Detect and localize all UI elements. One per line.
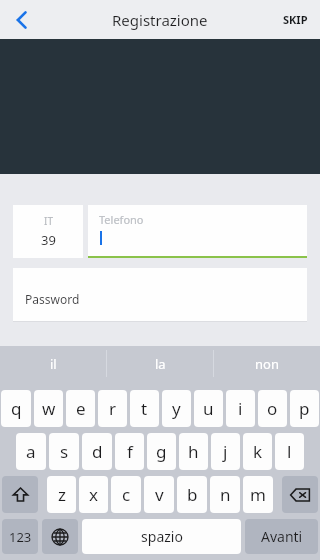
staticText: t bbox=[141, 397, 148, 420]
button[interactable]: g bbox=[147, 433, 176, 470]
button[interactable]: SKIP bbox=[279, 8, 312, 31]
button[interactable]: v bbox=[144, 476, 174, 513]
button[interactable]: x bbox=[79, 476, 108, 513]
staticText: w bbox=[42, 397, 56, 420]
staticText: x bbox=[89, 483, 98, 506]
staticText: SKIP bbox=[283, 12, 308, 27]
button[interactable]: e bbox=[66, 390, 95, 427]
staticText: q bbox=[11, 397, 22, 420]
button[interactable]: Backspace bbox=[282, 476, 318, 513]
staticText: a bbox=[26, 440, 36, 463]
staticText: r bbox=[109, 397, 117, 420]
button[interactable]: h bbox=[179, 433, 208, 470]
staticText: c bbox=[122, 483, 131, 506]
button[interactable]: y bbox=[162, 390, 191, 427]
staticText: Avanti bbox=[261, 527, 303, 546]
staticText: il bbox=[50, 355, 57, 373]
button[interactable]: n bbox=[210, 476, 240, 513]
button[interactable]: f bbox=[115, 433, 144, 470]
button[interactable]: non bbox=[214, 346, 320, 381]
button[interactable]: s bbox=[49, 433, 79, 470]
button[interactable]: t bbox=[130, 390, 159, 427]
button[interactable]: Avanti bbox=[245, 519, 318, 554]
staticText: Password bbox=[25, 291, 80, 307]
button[interactable]: b bbox=[177, 476, 207, 513]
button[interactable]: Telefono bbox=[88, 205, 307, 258]
button[interactable]: o bbox=[258, 390, 287, 427]
button[interactable]: il bbox=[0, 346, 106, 381]
staticText: b bbox=[187, 483, 198, 506]
button[interactable]: u bbox=[194, 390, 223, 427]
staticText: y bbox=[172, 397, 181, 420]
button[interactable]: c bbox=[111, 476, 141, 513]
staticText: n bbox=[220, 483, 231, 506]
staticText: o bbox=[267, 397, 278, 420]
staticText: non bbox=[255, 355, 279, 373]
button[interactable]: d bbox=[82, 433, 112, 470]
staticText: h bbox=[188, 440, 199, 463]
staticText: z bbox=[58, 483, 66, 506]
button[interactable]: 123 bbox=[2, 519, 38, 554]
staticText: v bbox=[155, 483, 164, 506]
button[interactable]: j bbox=[211, 433, 240, 470]
button[interactable]: spazio bbox=[82, 519, 241, 554]
staticText: p bbox=[299, 397, 310, 420]
staticText: m bbox=[250, 483, 266, 506]
staticText: Telefono bbox=[99, 212, 144, 227]
button[interactable]: z bbox=[47, 476, 76, 513]
staticText: g bbox=[156, 440, 167, 463]
button[interactable]: a bbox=[16, 433, 46, 470]
staticText: Registrazione bbox=[112, 10, 208, 30]
staticText: 39 bbox=[41, 231, 56, 249]
staticText: d bbox=[92, 440, 103, 463]
staticText: e bbox=[76, 397, 86, 420]
staticText: u bbox=[203, 397, 214, 420]
button[interactable]: q bbox=[1, 390, 31, 427]
staticText: IT bbox=[44, 214, 53, 228]
staticText: la bbox=[155, 355, 166, 373]
button[interactable]: Change keyboard bbox=[42, 519, 78, 554]
button[interactable]: Password bbox=[13, 268, 307, 322]
staticText: j bbox=[223, 440, 228, 463]
button[interactable]: i bbox=[226, 390, 255, 427]
button[interactable]: Back bbox=[0, 0, 44, 39]
button[interactable]: l bbox=[275, 433, 304, 470]
button[interactable]: w bbox=[34, 390, 63, 427]
button[interactable]: p bbox=[290, 390, 319, 427]
staticText: spazio bbox=[141, 527, 183, 546]
button[interactable]: la bbox=[107, 346, 213, 381]
staticText: i bbox=[238, 397, 243, 420]
button[interactable]: IT bbox=[13, 205, 83, 258]
button[interactable]: k bbox=[243, 433, 272, 470]
staticText: k bbox=[253, 440, 263, 463]
button[interactable]: r bbox=[98, 390, 127, 427]
staticText: l bbox=[287, 440, 292, 463]
staticText: f bbox=[127, 440, 133, 463]
staticText: 123 bbox=[9, 528, 32, 546]
button[interactable]: m bbox=[243, 476, 273, 513]
staticText: s bbox=[60, 440, 69, 463]
button[interactable]: Shift bbox=[2, 476, 38, 513]
